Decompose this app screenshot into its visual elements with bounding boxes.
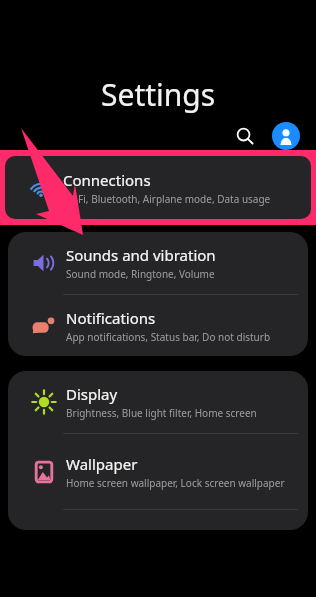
staticText: Settings: [101, 74, 216, 115]
staticText: Wallpaper: [66, 454, 138, 474]
staticText: Sound mode, Ringtone, Volume: [66, 267, 215, 281]
button[interactable]: Sounds and vibration: [8, 232, 308, 294]
staticText: Display: [66, 384, 118, 404]
staticText: Connections: [63, 170, 151, 190]
button[interactable]: Search: [230, 122, 260, 150]
button[interactable]: Account: [272, 122, 300, 150]
staticText: Home screen wallpaper, Lock screen wallp…: [66, 476, 285, 490]
staticText: App notifications, Status bar, Do not di…: [66, 330, 271, 344]
button[interactable]: Wallpaper: [8, 434, 308, 509]
staticText: Notifications: [66, 308, 156, 328]
button[interactable]: Connections: [5, 156, 311, 219]
staticText: Wi-Fi, Bluetooth, Airplane mode, Data us…: [63, 192, 271, 206]
button[interactable]: Display: [8, 371, 308, 433]
staticText: Sounds and vibration: [66, 245, 216, 265]
staticText: Brightness, Blue light filter, Home scre…: [66, 406, 257, 420]
button[interactable]: Notifications: [8, 295, 308, 356]
